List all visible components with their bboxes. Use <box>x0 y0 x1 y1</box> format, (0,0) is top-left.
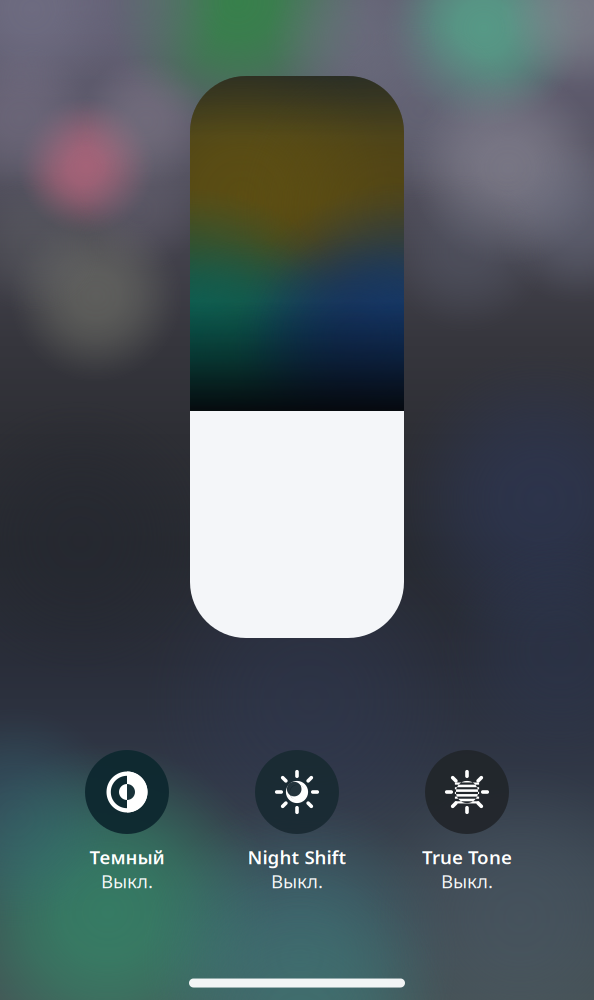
button[interactable]: Night Shift <box>213 742 381 902</box>
staticText: Выкл. <box>441 869 493 893</box>
staticText: Night Shift <box>247 845 346 869</box>
button[interactable]: Brightness <box>190 76 404 638</box>
button[interactable]: True Tone <box>383 742 551 902</box>
staticText: Выкл. <box>101 869 153 893</box>
staticText: Выкл. <box>271 869 323 893</box>
staticText: True Tone <box>422 845 512 869</box>
staticText: Темный <box>89 845 164 869</box>
button[interactable]: Темный <box>43 742 211 902</box>
